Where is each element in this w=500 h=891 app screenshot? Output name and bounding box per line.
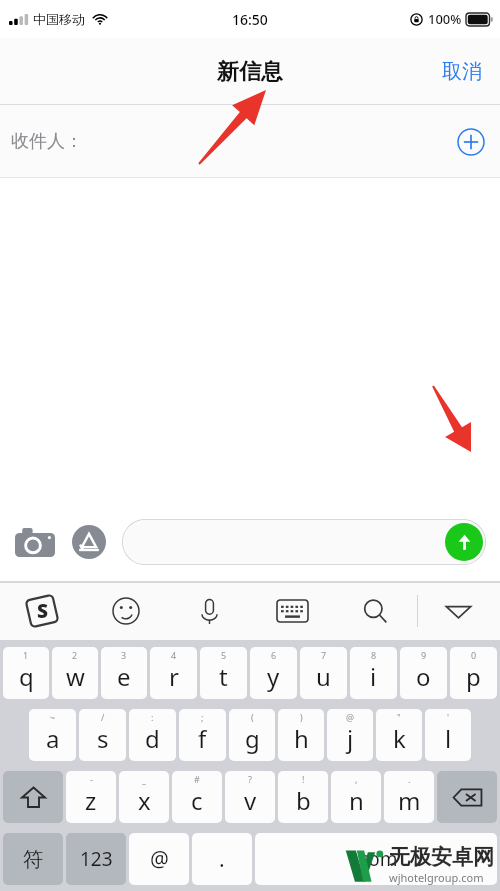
button[interactable]: ,: [331, 771, 381, 823]
staticText: #: [194, 773, 200, 785]
staticText: 100%: [428, 10, 462, 28]
staticText: 4: [171, 649, 177, 661]
button[interactable]: Shift: [3, 771, 63, 823]
button[interactable]: Add contact: [453, 124, 489, 160]
button[interactable]: 4: [150, 647, 197, 699]
button[interactable]: ~: [29, 709, 76, 761]
staticText: 16:50: [232, 10, 268, 29]
button[interactable]: 1: [3, 647, 49, 699]
staticText: l: [445, 722, 452, 755]
staticText: .com: [354, 846, 398, 872]
button[interactable]: 取消: [436, 51, 488, 92]
button[interactable]: Voice input: [168, 582, 251, 640]
button[interactable]: ': [425, 709, 471, 761]
button[interactable]: Hide keyboard: [417, 582, 500, 640]
staticText: 7: [321, 649, 327, 661]
staticText: 取消: [442, 59, 482, 84]
button[interactable]: 0: [450, 647, 497, 699]
button[interactable]: #: [172, 771, 222, 823]
staticText: ': [447, 711, 450, 723]
button[interactable]: ;: [179, 709, 226, 761]
staticText: p: [466, 660, 481, 693]
button[interactable]: 8: [350, 647, 397, 699]
staticText: c: [191, 784, 203, 817]
button[interactable]: _: [119, 771, 169, 823]
button[interactable]: Keyboard: [251, 582, 334, 640]
staticText: S: [37, 598, 48, 624]
staticText: .: [219, 845, 225, 874]
staticText: k: [393, 722, 406, 755]
staticText: n: [349, 784, 364, 817]
staticText: x: [138, 784, 151, 817]
staticText: 收件人：: [11, 130, 83, 153]
staticText: 123: [80, 846, 113, 872]
button[interactable]: 符: [3, 833, 63, 885]
staticText: q: [19, 660, 34, 693]
staticText: e: [117, 660, 131, 693]
button[interactable]: 6: [250, 647, 297, 699]
staticText: r: [169, 660, 179, 693]
staticText: 中国移动: [33, 11, 85, 27]
button[interactable]: @: [129, 833, 189, 885]
button[interactable]: (: [229, 709, 275, 761]
staticText: g: [245, 722, 260, 755]
staticText: ): [300, 711, 303, 723]
staticText: !: [302, 773, 305, 785]
button[interactable]: .: [192, 833, 252, 885]
staticText: wjhotelgroup.com: [389, 870, 484, 885]
button[interactable]: 123: [66, 833, 126, 885]
staticText: i: [370, 660, 377, 693]
staticText: 6: [271, 649, 277, 661]
staticText: z: [85, 784, 97, 817]
staticText: 2: [72, 649, 78, 661]
button[interactable]: -: [66, 771, 116, 823]
button[interactable]: 3: [101, 647, 147, 699]
button[interactable]: !: [278, 771, 328, 823]
button[interactable]: Sogou input: [0, 582, 84, 640]
staticText: (: [251, 711, 254, 723]
button[interactable]: Emoji: [84, 582, 168, 640]
button[interactable]: App Store: [64, 517, 114, 567]
button[interactable]: Search: [334, 582, 417, 640]
staticText: 新信息: [217, 58, 283, 86]
button[interactable]: :: [129, 709, 176, 761]
staticText: ;: [201, 711, 204, 723]
staticText: m: [398, 784, 421, 817]
staticText: 5: [221, 649, 227, 661]
staticText: w: [66, 660, 85, 693]
staticText: @: [346, 711, 355, 723]
staticText: s: [97, 722, 109, 755]
button[interactable]: /: [79, 709, 126, 761]
staticText: _: [142, 773, 146, 785]
staticText: h: [294, 722, 309, 755]
staticText: 0: [471, 649, 477, 661]
staticText: 9: [421, 649, 427, 661]
button[interactable]: .com: [255, 833, 497, 885]
button[interactable]: 5: [200, 647, 247, 699]
button[interactable]: .: [384, 771, 434, 823]
button[interactable]: Send: [445, 523, 483, 561]
staticText: o: [416, 660, 431, 693]
staticText: j: [347, 722, 354, 755]
button[interactable]: ): [278, 709, 324, 761]
staticText: -: [90, 773, 93, 785]
button[interactable]: Delete: [437, 771, 497, 823]
button[interactable]: 2: [52, 647, 98, 699]
button[interactable]: ?: [225, 771, 275, 823]
button[interactable]: Send: [122, 519, 486, 565]
button[interactable]: ": [376, 709, 422, 761]
button[interactable]: 7: [300, 647, 347, 699]
staticText: v: [244, 784, 257, 817]
staticText: d: [145, 722, 160, 755]
staticText: 1: [23, 649, 29, 661]
button[interactable]: 9: [400, 647, 447, 699]
staticText: b: [296, 784, 311, 817]
staticText: /: [101, 711, 105, 723]
staticText: .: [408, 773, 411, 785]
button[interactable]: Camera: [10, 517, 60, 567]
staticText: 8: [371, 649, 377, 661]
button[interactable]: @: [327, 709, 373, 761]
staticText: ?: [248, 773, 252, 785]
staticText: t: [219, 660, 228, 693]
staticText: @: [150, 845, 169, 874]
